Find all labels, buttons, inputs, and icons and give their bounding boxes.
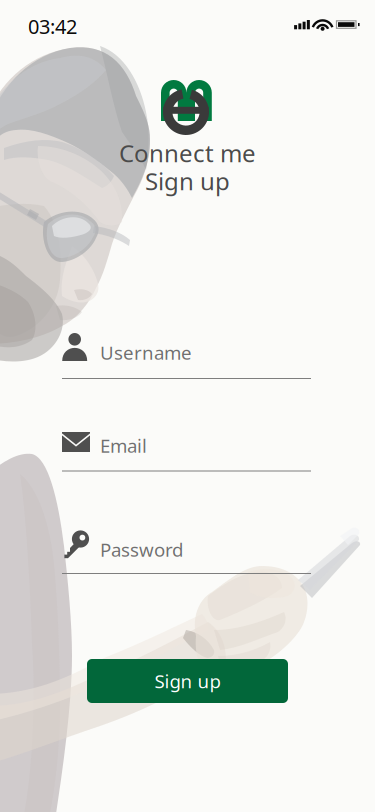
button[interactable]: Email xyxy=(62,432,311,482)
button[interactable]: Username xyxy=(62,333,311,389)
staticText: 03:42 xyxy=(28,13,77,40)
staticText: Sign up xyxy=(145,165,230,197)
staticText: Sign up xyxy=(154,669,220,693)
staticText: Username xyxy=(100,340,192,365)
button[interactable]: Password xyxy=(62,531,311,585)
staticText: Connect me xyxy=(119,137,256,169)
button[interactable]: Sign up xyxy=(87,659,288,703)
staticText: Password xyxy=(100,537,183,562)
staticText: Email xyxy=(100,433,147,458)
